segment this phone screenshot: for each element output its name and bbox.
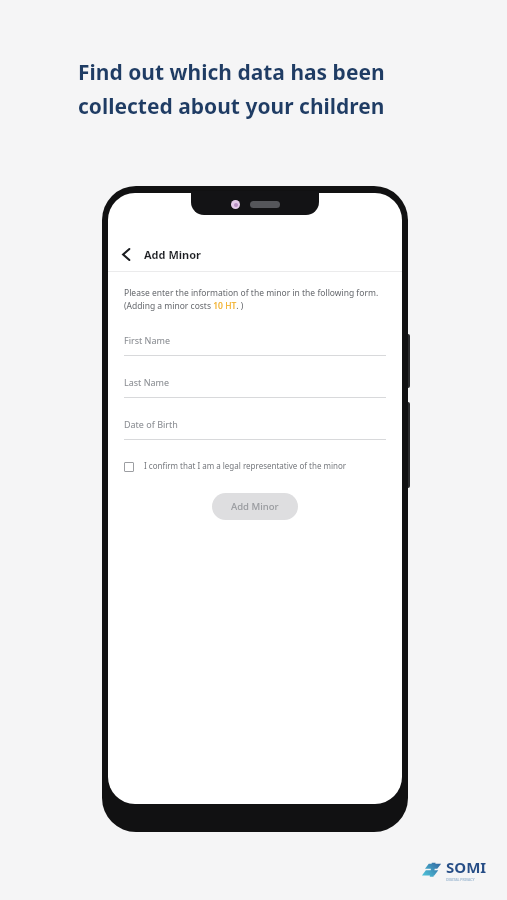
staticText: DIGITAL PRIVACY [446, 877, 475, 882]
staticText: Add Minor [144, 247, 201, 262]
button[interactable]: I confirm that I am a legal representati… [124, 460, 386, 471]
button[interactable]: Last Name [124, 376, 386, 398]
button[interactable]: Back [108, 237, 144, 271]
staticText: Find out which data has been [78, 58, 385, 87]
staticText: SOMI [446, 857, 487, 877]
staticText: I confirm that I am a legal representati… [144, 460, 347, 471]
button[interactable]: Add Minor [212, 493, 298, 520]
staticText: collected about your children [78, 92, 385, 121]
staticText: First Name [124, 334, 170, 346]
staticText: Add Minor [231, 500, 279, 513]
staticText: Last Name [124, 376, 170, 388]
button[interactable]: Date of Birth [124, 418, 386, 440]
staticText: Date of Birth [124, 418, 178, 430]
staticText: Please enter the information of the mino… [124, 287, 386, 312]
button[interactable]: First Name [124, 334, 386, 356]
button[interactable]: SOMI [425, 857, 487, 882]
